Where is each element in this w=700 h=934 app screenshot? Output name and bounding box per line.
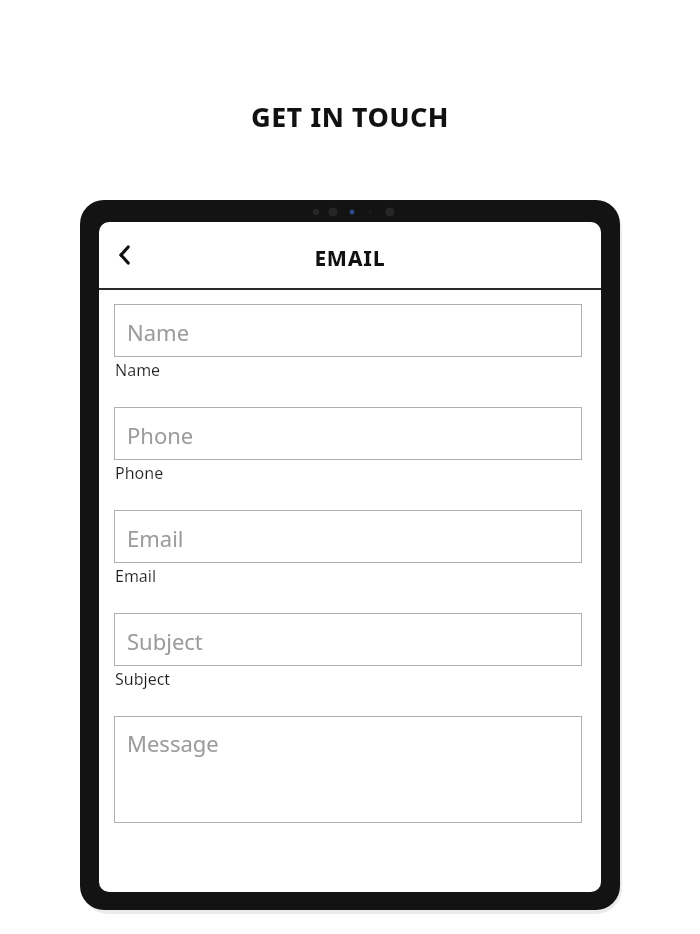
staticText: Email	[115, 565, 157, 587]
staticText: Subject	[127, 626, 203, 656]
staticText: Subject	[115, 668, 171, 690]
staticText: EMAIL	[99, 244, 601, 273]
button[interactable]: Phone	[114, 407, 582, 460]
button[interactable]: Email	[114, 510, 582, 563]
button[interactable]: Back	[105, 235, 145, 275]
button[interactable]: Name	[114, 304, 582, 357]
staticText: GET IN TOUCH	[0, 98, 700, 135]
button[interactable]: Message	[114, 716, 582, 823]
staticText: Name	[115, 359, 161, 381]
staticText: Message	[127, 728, 219, 758]
staticText: Email	[127, 523, 184, 553]
staticText: Phone	[127, 420, 194, 450]
staticText: Name	[127, 317, 190, 347]
button[interactable]: Subject	[114, 613, 582, 666]
staticText: Phone	[115, 462, 164, 484]
